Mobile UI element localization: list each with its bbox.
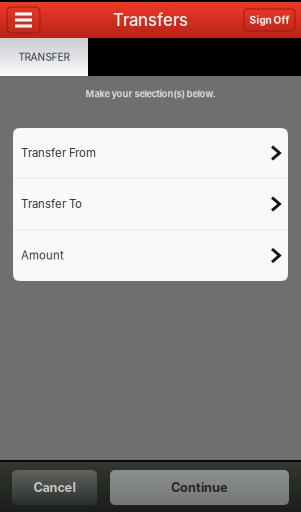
staticText: Cancel: [33, 480, 75, 495]
button[interactable]: Menu: [7, 7, 40, 33]
staticText: Amount: [21, 249, 64, 262]
staticText: Transfers: [113, 10, 188, 30]
button[interactable]: Sign Off: [244, 9, 295, 31]
staticText: Sign Off: [249, 14, 289, 26]
button[interactable]: Transfer From: [13, 128, 288, 179]
button[interactable]: TRANSFER: [0, 38, 88, 76]
staticText: Transfer To: [21, 197, 82, 211]
button[interactable]: Amount: [13, 230, 288, 281]
button[interactable]: Cancel: [12, 470, 97, 505]
button[interactable]: Continue: [110, 470, 289, 505]
staticText: TRANSFER: [18, 51, 69, 63]
button[interactable]: Transfer To: [13, 179, 288, 230]
staticText: Make your selection(s) below.: [85, 88, 215, 99]
staticText: Continue: [171, 480, 228, 495]
staticText: Transfer From: [21, 146, 96, 160]
